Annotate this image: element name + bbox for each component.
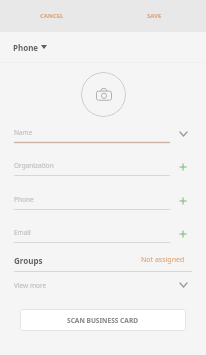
button[interactable]: Groups [0,250,206,270]
button[interactable]: View more [176,278,190,292]
button[interactable]: Expand name [176,127,190,141]
staticText: Phone [14,195,34,204]
button[interactable]: CANCEL [0,0,103,32]
button[interactable] [0,276,206,293]
button[interactable]: Phone [13,40,47,54]
staticText: Groups [14,255,43,266]
button[interactable]: Add [176,194,190,208]
button[interactable]: Add [176,160,190,174]
staticText: Organization [14,161,54,170]
button[interactable]: Add photo [81,72,126,117]
button[interactable]: Add [176,227,190,241]
button[interactable]: SAVE [103,0,206,32]
staticText: Not assigned [141,255,185,265]
staticText: Email [14,228,31,237]
button[interactable]: SCAN BUSINESS CARD [20,309,186,331]
staticText: SCAN BUSINESS CARD [67,316,139,325]
staticText: View more [14,281,47,290]
staticText: Name [14,128,33,137]
staticText: SAVE [147,12,162,20]
staticText: Phone [13,42,39,53]
staticText: CANCEL [40,12,64,20]
